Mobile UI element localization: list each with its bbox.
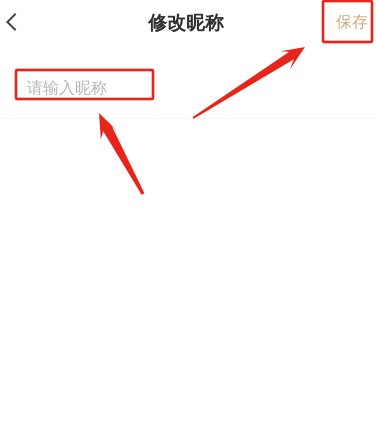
button[interactable]: 保存	[328, 0, 376, 44]
staticText: 请输入昵称	[27, 78, 107, 98]
button[interactable]: Back	[0, 0, 23, 44]
staticText: 保存	[336, 12, 368, 32]
button[interactable]: 请输入昵称	[0, 44, 376, 118]
staticText: 修改昵称	[148, 11, 224, 34]
